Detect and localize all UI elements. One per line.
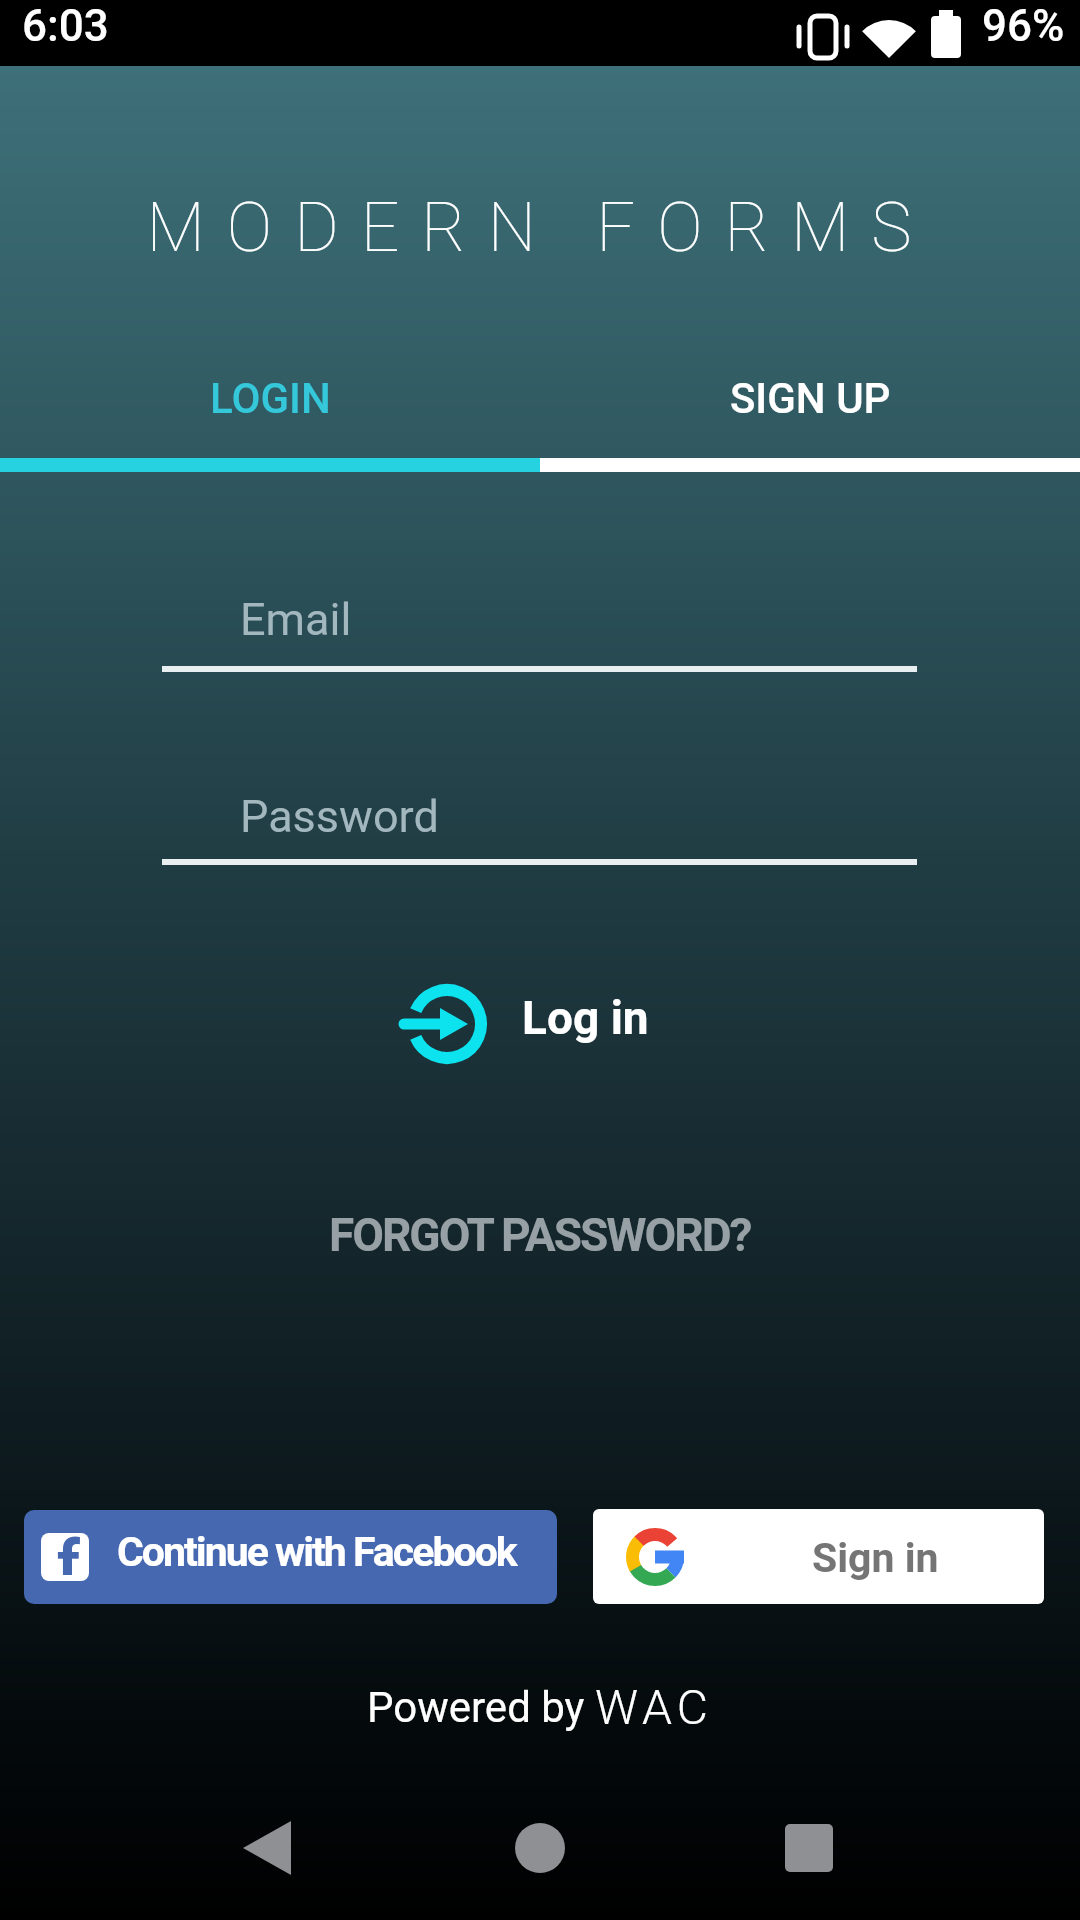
button[interactable]: FORGOT PASSWORD? <box>300 1190 780 1280</box>
staticText: Log in <box>522 991 649 1045</box>
button[interactable]: SIGN UP <box>540 344 1080 452</box>
staticText: 6:03 <box>22 0 109 66</box>
staticText: FORGOT PASSWORD? <box>329 1208 751 1262</box>
staticText: MODERN FORMS <box>0 188 1080 268</box>
button[interactable]: LOGIN <box>0 344 540 452</box>
button[interactable] <box>720 1794 1080 1920</box>
button[interactable] <box>0 1794 360 1920</box>
staticText: Continue with Facebook <box>117 1528 516 1576</box>
staticText: SIGN UP <box>730 374 891 423</box>
staticText: LOGIN <box>210 374 331 423</box>
staticText: f <box>57 1533 80 1575</box>
button[interactable] <box>360 1794 720 1920</box>
button[interactable]: Log in <box>380 964 670 1084</box>
button[interactable]: Password <box>162 756 917 866</box>
staticText: Email <box>240 593 352 646</box>
staticText: Password <box>240 790 439 843</box>
staticText: Powered by <box>367 1683 595 1732</box>
button[interactable]: f <box>24 1510 557 1604</box>
staticText: 96% <box>982 0 1065 66</box>
button[interactable]: Email <box>162 560 917 670</box>
staticText: WAC <box>595 1679 713 1735</box>
button[interactable]: Sign in <box>593 1509 1044 1604</box>
staticText: Sign in <box>812 1534 939 1582</box>
